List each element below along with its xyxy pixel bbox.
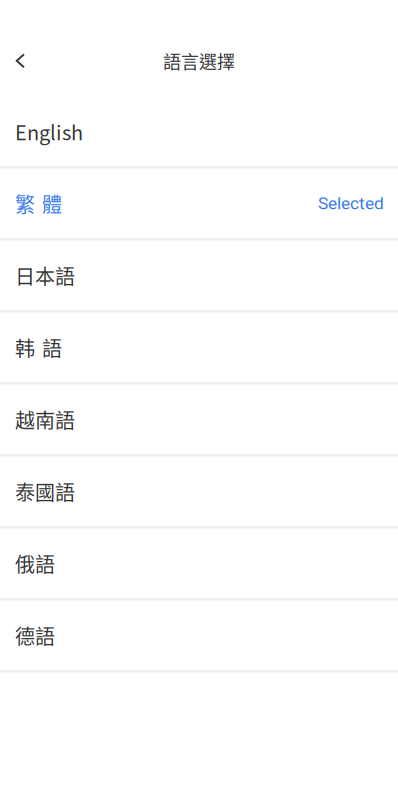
button[interactable]: English — [0, 96, 398, 168]
staticText: 繁 體 — [15, 189, 62, 218]
staticText: English — [15, 117, 83, 146]
staticText: 語言選擇 — [163, 48, 235, 74]
staticText: 韩 語 — [15, 333, 62, 362]
button[interactable]: 繁 體 — [0, 168, 398, 240]
staticText: Selected — [318, 193, 384, 214]
button[interactable]: 俄語 — [0, 528, 398, 600]
staticText: 泰國語 — [15, 477, 75, 506]
staticText: 德語 — [15, 621, 55, 650]
staticText: 俄語 — [15, 549, 55, 578]
button[interactable]: Back — [0, 39, 44, 83]
staticText: 日本語 — [15, 261, 75, 290]
button[interactable]: 日本語 — [0, 240, 398, 312]
button[interactable]: 泰國語 — [0, 456, 398, 528]
button[interactable]: 韩 語 — [0, 312, 398, 384]
button[interactable]: 越南語 — [0, 384, 398, 456]
staticText: 越南語 — [15, 405, 75, 434]
button[interactable]: 德語 — [0, 600, 398, 672]
